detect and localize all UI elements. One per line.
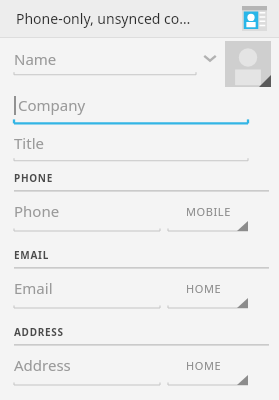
staticText: EMAIL bbox=[14, 248, 49, 262]
button[interactable]: Change account bbox=[242, 6, 267, 31]
staticText: Phone bbox=[14, 201, 60, 221]
button[interactable]: Name bbox=[0, 44, 279, 74]
staticText: Phone-only, unsynced co… bbox=[16, 9, 191, 28]
staticText: HOME bbox=[186, 358, 222, 373]
staticText: Title bbox=[14, 133, 44, 153]
button[interactable]: Phone bbox=[0, 192, 160, 230]
staticText: MOBILE bbox=[186, 204, 231, 219]
staticText: Company bbox=[18, 95, 86, 115]
button[interactable]: Phone-only, unsynced co… bbox=[0, 0, 279, 37]
staticText: Address bbox=[14, 355, 71, 375]
staticText: HOME bbox=[186, 281, 222, 296]
button[interactable]: Email bbox=[0, 269, 160, 307]
button[interactable]: Address bbox=[0, 346, 160, 384]
staticText: PHONE bbox=[14, 171, 53, 185]
button[interactable]: MOBILE bbox=[164, 192, 279, 230]
staticText: Email bbox=[14, 278, 53, 298]
button[interactable]: HOME bbox=[164, 346, 279, 384]
staticText: Name bbox=[14, 49, 57, 69]
button[interactable]: Add contact photo bbox=[225, 41, 271, 87]
button[interactable]: Company bbox=[0, 88, 279, 126]
button[interactable]: HOME bbox=[164, 269, 279, 307]
button[interactable]: Title bbox=[0, 126, 279, 164]
staticText: ADDRESS bbox=[14, 325, 64, 339]
button[interactable]: Expand name fields bbox=[202, 52, 218, 64]
